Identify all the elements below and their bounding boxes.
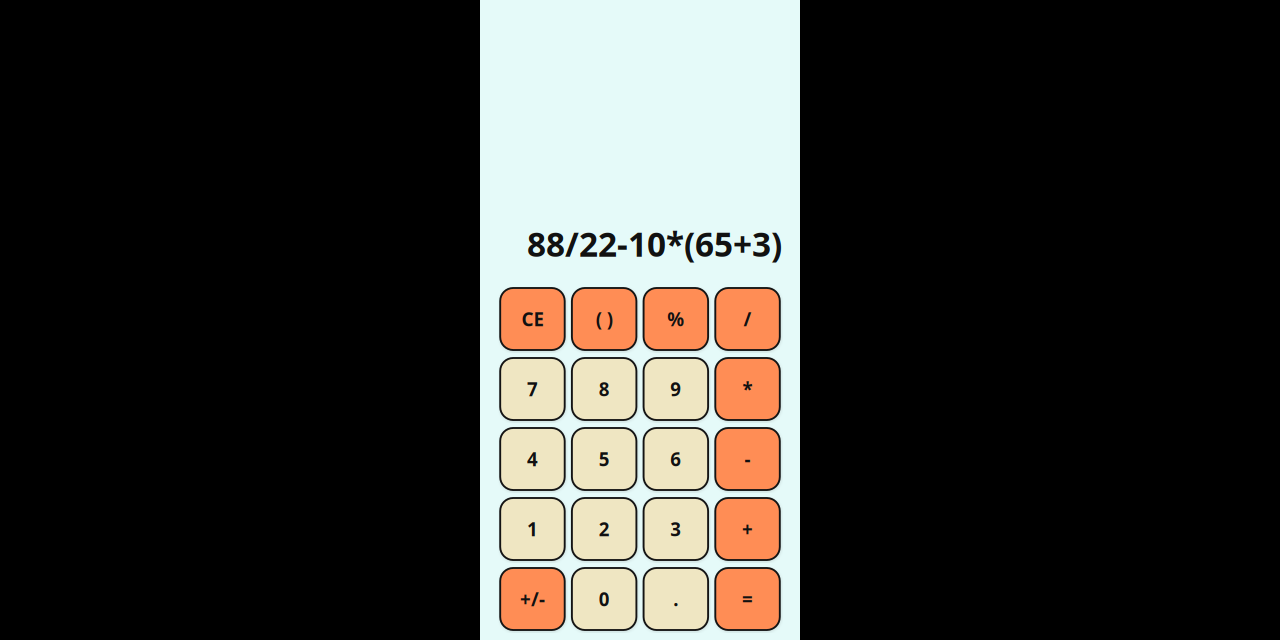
staticText: 0 <box>599 587 610 611</box>
staticText: = <box>742 587 753 611</box>
staticText: 1 <box>527 517 538 541</box>
staticText: +/- <box>520 587 545 611</box>
staticText: % <box>667 307 684 331</box>
button[interactable]: 6 <box>644 428 708 490</box>
staticText: 2 <box>599 517 610 541</box>
staticText: 8 <box>599 377 610 401</box>
staticText: 9 <box>670 377 681 401</box>
button[interactable]: Clear entry <box>500 288 565 350</box>
button[interactable]: Percent <box>644 288 708 350</box>
button[interactable]: Equals <box>715 568 780 630</box>
button[interactable]: Minus <box>715 428 780 490</box>
button[interactable]: Plus <box>715 498 780 560</box>
button[interactable]: 9 <box>644 358 708 420</box>
button[interactable]: 0 <box>572 568 636 630</box>
button[interactable]: Decimal point <box>644 568 708 630</box>
staticText: 4 <box>527 447 538 471</box>
button[interactable]: Toggle sign <box>500 568 565 630</box>
staticText: - <box>744 447 750 471</box>
button[interactable]: 3 <box>644 498 708 560</box>
staticText: + <box>742 517 753 541</box>
staticText: 5 <box>599 447 610 471</box>
button[interactable]: Parentheses <box>572 288 636 350</box>
button[interactable]: Divide <box>715 288 780 350</box>
staticText: / <box>743 307 751 331</box>
button[interactable]: 7 <box>500 358 565 420</box>
staticText: CE <box>521 307 543 331</box>
button[interactable]: 8 <box>572 358 636 420</box>
staticText: * <box>742 377 752 401</box>
staticText: . <box>673 587 678 611</box>
button[interactable]: 4 <box>500 428 565 490</box>
button[interactable]: 5 <box>572 428 636 490</box>
staticText: 88/22-10*(65+3) <box>527 222 782 266</box>
staticText: 7 <box>527 377 538 401</box>
staticText: 6 <box>670 447 681 471</box>
button[interactable]: Multiply <box>715 358 780 420</box>
button[interactable]: 1 <box>500 498 565 560</box>
staticText: 3 <box>670 517 681 541</box>
button[interactable]: 2 <box>572 498 636 560</box>
staticText: ( ) <box>596 307 613 331</box>
